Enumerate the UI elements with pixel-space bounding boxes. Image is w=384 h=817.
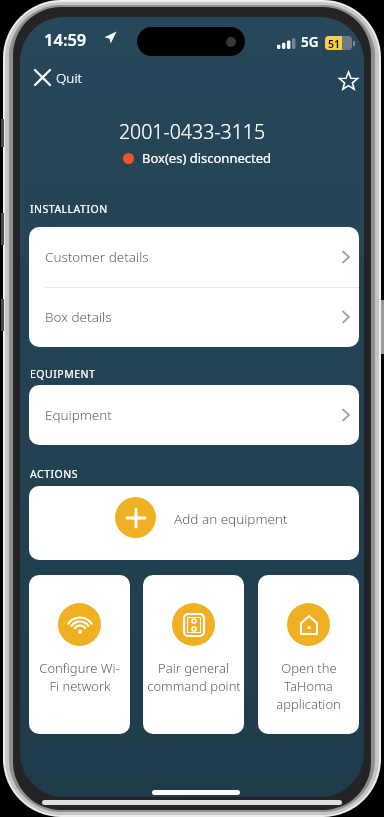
staticText: Pair general xyxy=(158,659,229,677)
button[interactable]: Add an equipment xyxy=(29,486,359,560)
staticText: Add an equipment xyxy=(174,510,288,528)
button[interactable]: Open the xyxy=(258,575,359,734)
staticText: 2001-0433-3115 xyxy=(20,118,364,145)
button[interactable]: Box details xyxy=(29,287,359,347)
staticText: 14:59 xyxy=(44,28,87,50)
staticText: ACTIONS xyxy=(30,467,78,481)
staticText: Box(es) disconnected xyxy=(142,149,272,167)
staticText: Open the xyxy=(281,659,337,677)
button[interactable]: Pair general xyxy=(143,575,244,734)
staticText: INSTALLATION xyxy=(30,202,108,216)
staticText: 51 xyxy=(328,37,341,50)
staticText: application xyxy=(276,695,341,713)
staticText: Quit xyxy=(56,69,83,87)
staticText: Box details xyxy=(45,308,112,326)
button[interactable]: Customer details xyxy=(29,227,359,287)
button[interactable] xyxy=(26,61,58,93)
staticText: Fi network xyxy=(49,677,111,695)
staticText: 5G xyxy=(301,33,319,51)
staticText: Configure Wi- xyxy=(39,659,120,677)
staticText: command point xyxy=(147,677,241,695)
button[interactable]: Equipment xyxy=(29,385,359,445)
staticText: EQUIPMENT xyxy=(30,367,96,381)
button[interactable] xyxy=(335,67,361,93)
button[interactable]: Configure Wi- xyxy=(29,575,130,734)
staticText: Equipment xyxy=(45,406,112,424)
staticText: TaHoma xyxy=(284,677,333,695)
staticText: Customer details xyxy=(45,248,149,266)
